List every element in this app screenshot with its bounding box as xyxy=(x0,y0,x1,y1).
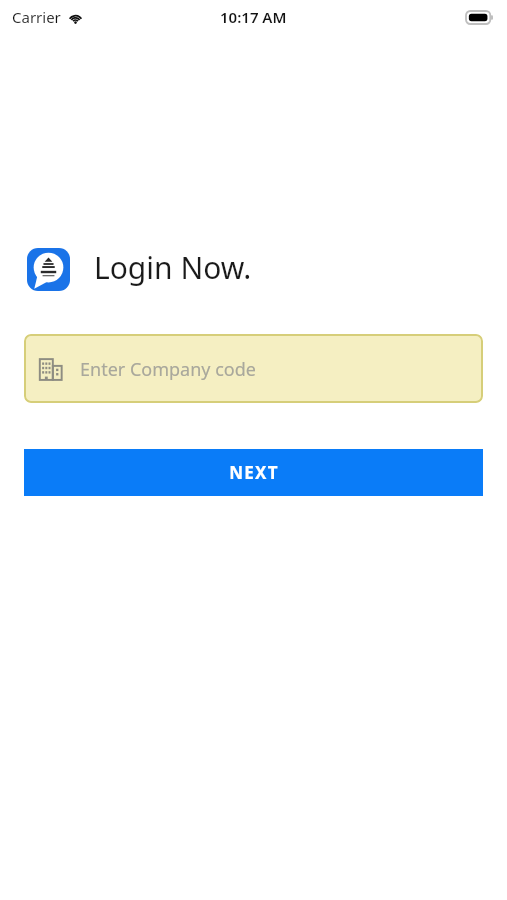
other: Wi-Fi xyxy=(68,10,83,25)
other: Utility app logo xyxy=(27,248,70,291)
button[interactable]: NEXT xyxy=(24,449,483,496)
staticText: 10:17 AM xyxy=(220,7,287,27)
other: Company xyxy=(38,356,64,382)
staticText: Login Now. xyxy=(94,247,252,288)
staticText: NEXT xyxy=(229,461,279,484)
staticText: Enter Company code xyxy=(80,357,256,382)
other: Battery xyxy=(466,11,493,24)
staticText: Carrier xyxy=(12,7,61,27)
button[interactable]: Company xyxy=(24,334,483,403)
